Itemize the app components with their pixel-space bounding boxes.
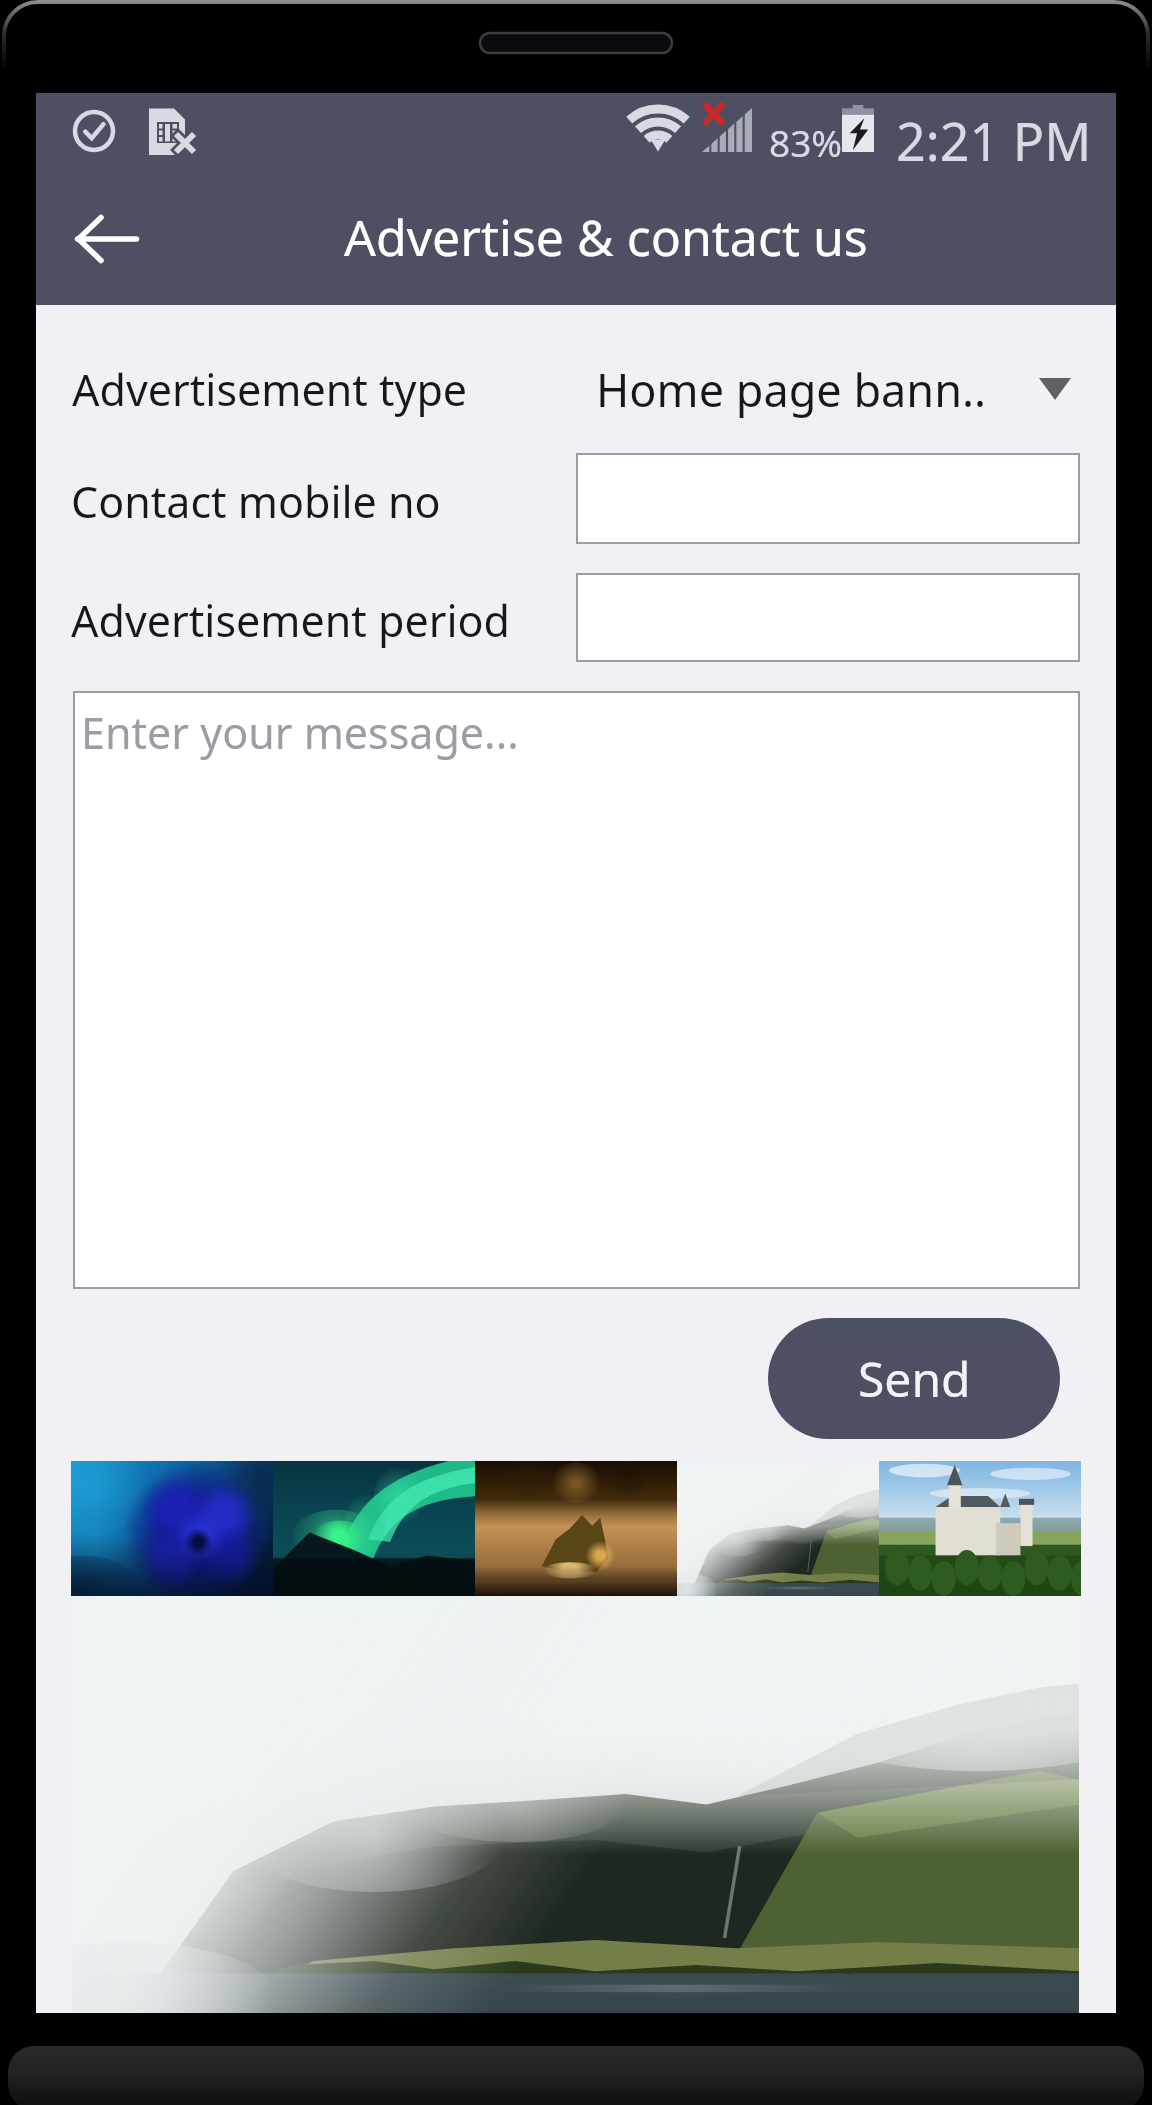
button[interactable] (475, 1461, 677, 1596)
staticText: Advertisement type (72, 360, 468, 419)
button[interactable] (879, 1461, 1081, 1596)
staticText: Advertise & contact us (344, 203, 868, 271)
button[interactable] (677, 1461, 879, 1596)
staticText: Advertisement period (71, 591, 510, 650)
button[interactable]: Home page bann.. (596, 347, 1071, 431)
staticText: Send (858, 1346, 971, 1411)
staticText: Contact mobile no (71, 472, 441, 531)
button[interactable]: No SIM card (145, 107, 195, 157)
button[interactable]: Do not disturb (71, 108, 117, 154)
button[interactable] (576, 453, 1080, 544)
button[interactable] (72, 1596, 1079, 2013)
button[interactable] (71, 1461, 273, 1596)
button[interactable] (576, 573, 1080, 662)
button[interactable] (273, 1461, 475, 1596)
staticText: Home page bann.. (596, 359, 987, 420)
staticText: 2:21 PM (896, 105, 1092, 176)
staticText: 83% (769, 117, 843, 167)
button[interactable]: Enter your message... (73, 691, 1080, 1289)
button[interactable]: Send (768, 1318, 1060, 1439)
staticText: Enter your message... (81, 703, 519, 762)
button[interactable]: Back (54, 191, 158, 287)
